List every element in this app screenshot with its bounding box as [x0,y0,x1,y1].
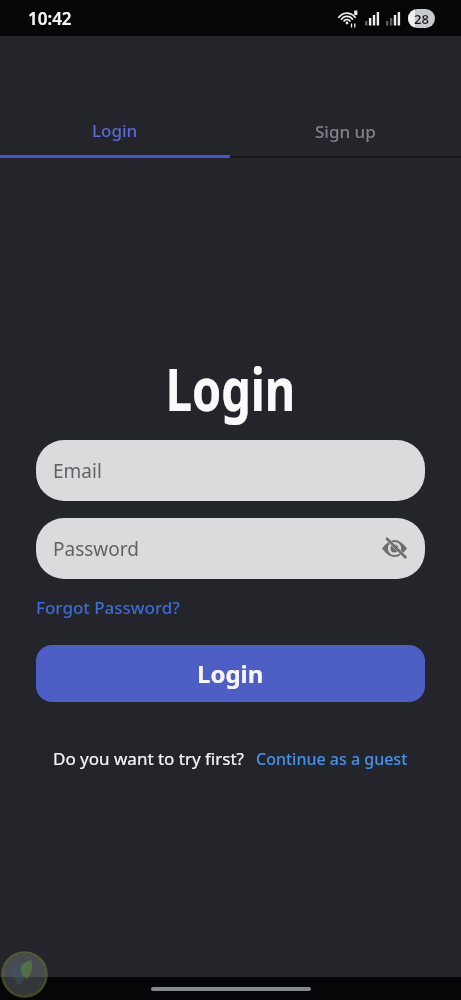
staticText: Do you want to try first? [53,747,244,770]
staticText: Sign up [315,120,376,143]
button[interactable]: Sign up [230,106,461,158]
button[interactable]: Login [0,106,230,158]
staticText: 10:42 [28,7,72,30]
button[interactable]: Continue as a guest [256,748,408,770]
button[interactable]: Login [36,645,425,702]
staticText: Login [92,119,138,142]
button[interactable]: Email [36,440,425,501]
staticText: Login [197,657,264,690]
button[interactable]: Forgot Password? [36,596,180,619]
button[interactable]: Password [36,518,425,579]
staticText: Login [51,347,410,429]
staticText: Password [53,536,139,562]
button[interactable] [381,535,408,562]
staticText: Email [53,458,102,484]
staticText: 28 [414,10,429,28]
